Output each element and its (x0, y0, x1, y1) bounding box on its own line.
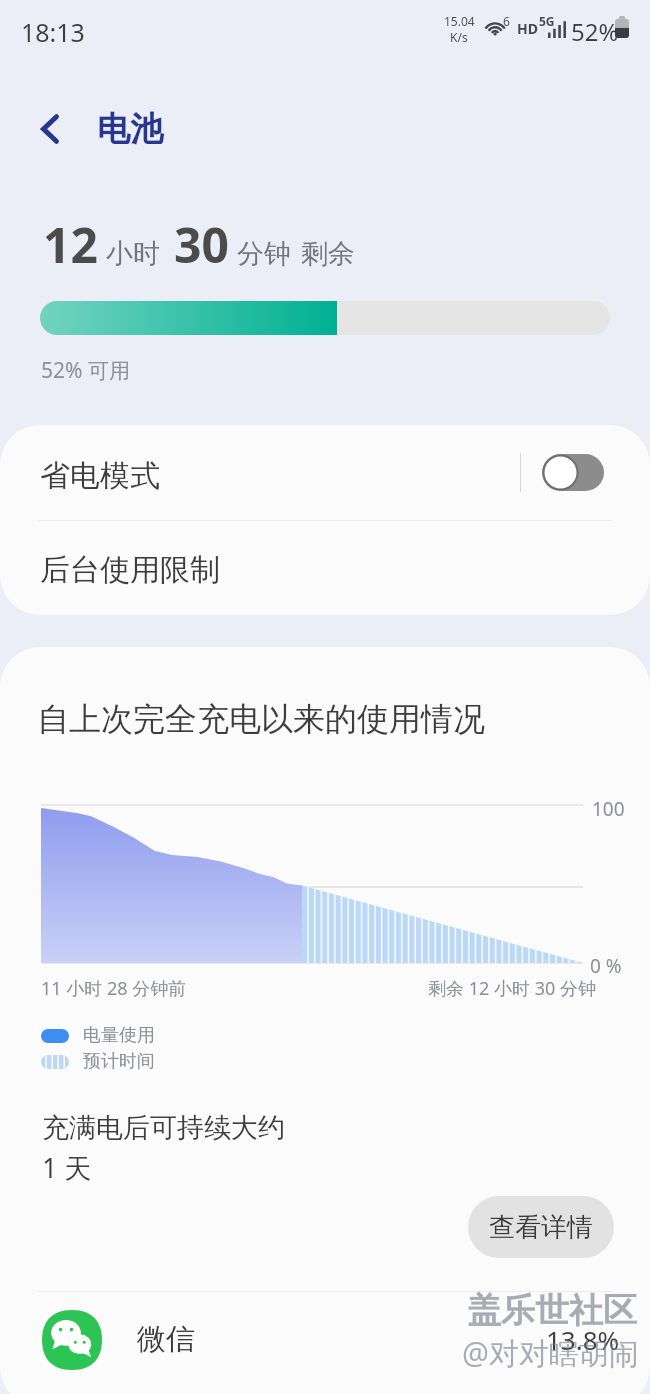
staticText: 电量使用 (83, 1024, 155, 1047)
staticText: 微信 (137, 1321, 195, 1358)
staticText: @对对瞎胡闹 (462, 1332, 639, 1373)
staticText: 预计时间 (83, 1050, 155, 1073)
staticText: 自上次完全充电以来的使用情况 (37, 699, 485, 739)
staticText: 查看详情 (489, 1211, 593, 1244)
staticText: 电池 (97, 108, 163, 150)
staticText: 0 % (590, 953, 622, 979)
staticText: 18:13 (21, 15, 85, 49)
button[interactable]: 省电模式 (0, 425, 650, 520)
button[interactable]: 微信 (0, 1282, 650, 1394)
staticText: 剩余 12 小时 30 分钟 (428, 976, 596, 1001)
staticText: 后台使用限制 (40, 551, 220, 589)
staticText: 100 (592, 796, 625, 822)
staticText: 省电模式 (40, 457, 160, 495)
staticText: 小时 (106, 237, 160, 271)
staticText: 30 (174, 212, 229, 277)
button[interactable]: 查看详情 (468, 1196, 614, 1258)
staticText: 52% 可用 (41, 356, 130, 385)
button[interactable]: 后台使用限制 (0, 521, 650, 615)
staticText: 盖乐世社区 (467, 1289, 637, 1332)
staticText: 1 天 (42, 1149, 92, 1186)
staticText: HD (517, 19, 538, 38)
button[interactable]: Power saving mode toggle (542, 454, 604, 491)
button[interactable]: Back (28, 106, 74, 152)
staticText: 剩余 (301, 237, 355, 271)
staticText: 充满电后可持续大约 (42, 1111, 285, 1145)
staticText: 6 (503, 13, 510, 29)
staticText: 分钟 (237, 237, 291, 271)
staticText: 52% (571, 15, 619, 48)
staticText: 5G (539, 13, 555, 29)
staticText: K/s (450, 29, 468, 45)
staticText: 12 (43, 212, 98, 277)
staticText: 13.8% (546, 1322, 620, 1357)
staticText: 11 小时 28 分钟前 (41, 976, 187, 1001)
staticText: 15.04 (444, 13, 475, 29)
